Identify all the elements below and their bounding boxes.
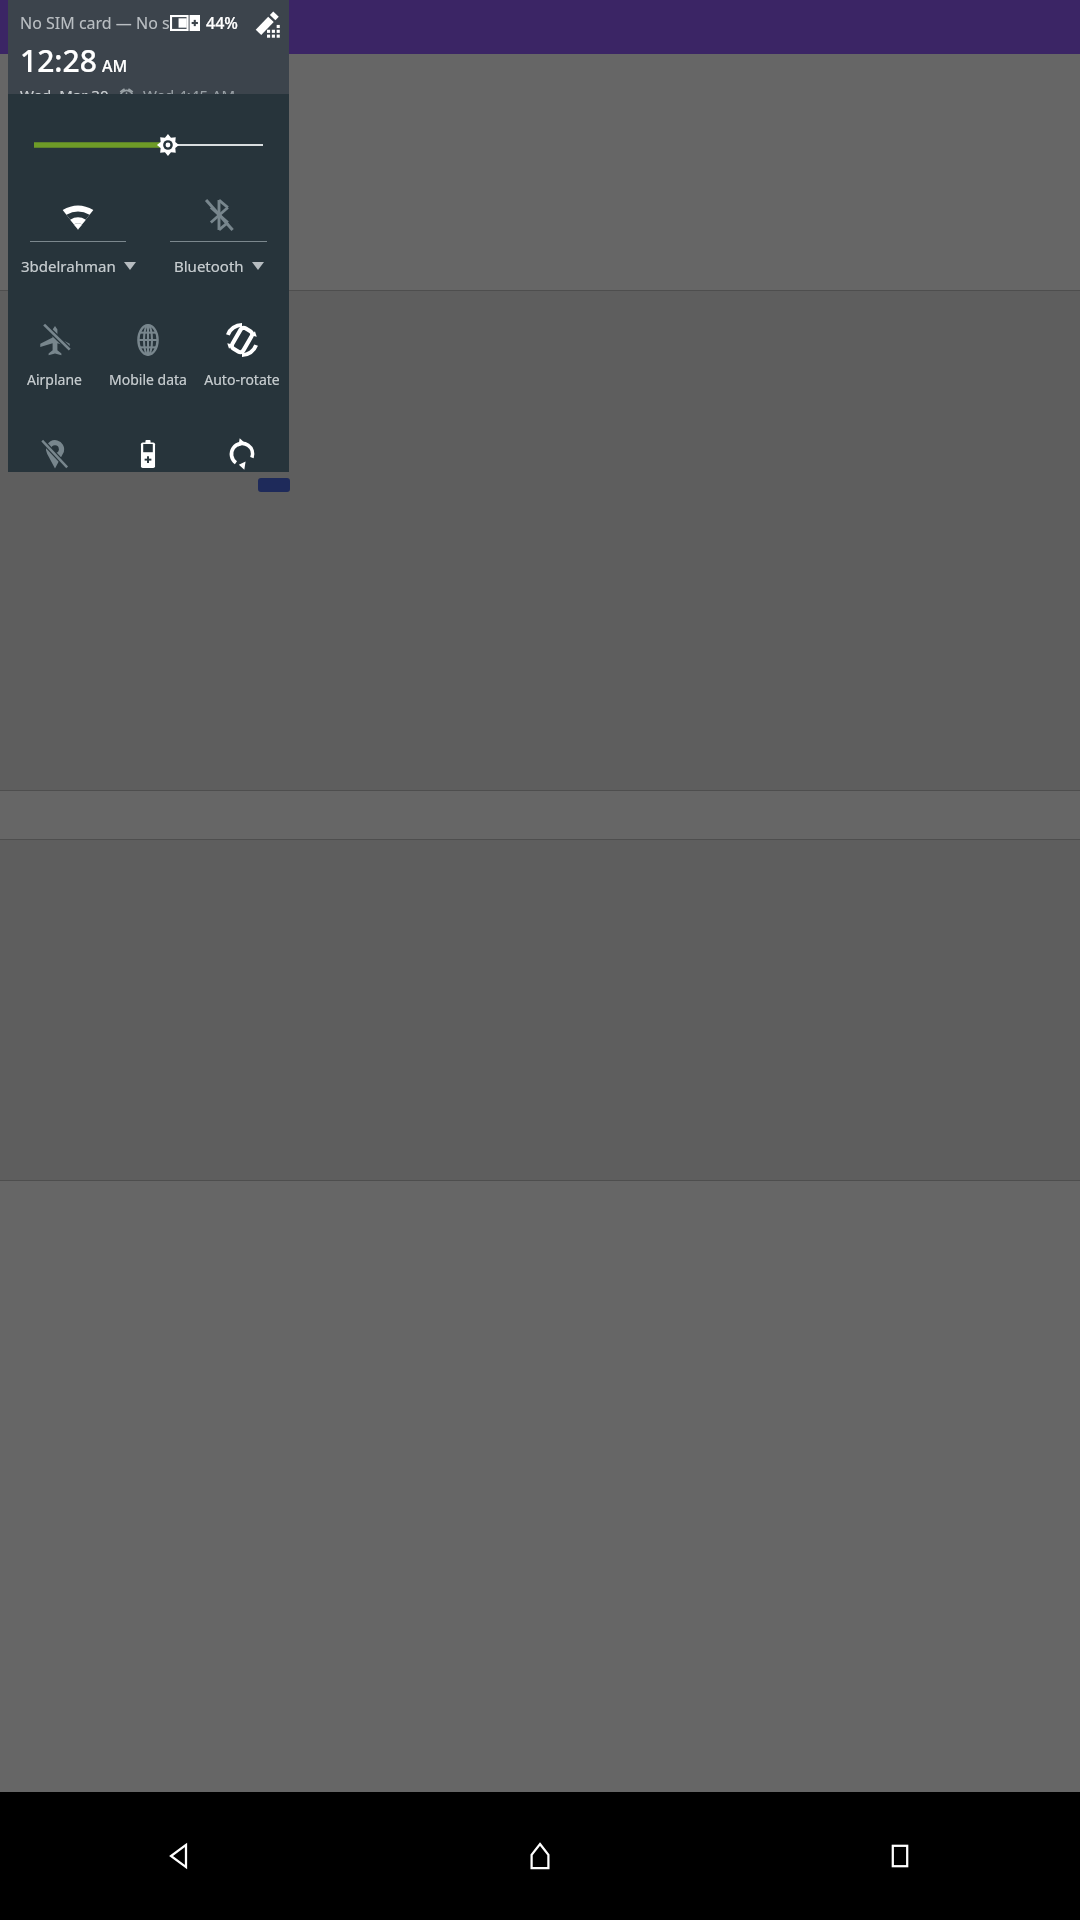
button[interactable]: Edit quick settings — [254, 6, 279, 40]
button[interactable]: Recent apps — [720, 1792, 1080, 1920]
staticText: 12:28 — [20, 40, 97, 81]
button[interactable]: Mobile data — [101, 320, 195, 406]
button[interactable]: Airplane mode — [8, 320, 101, 406]
button[interactable]: 3bdelrahman — [8, 192, 148, 296]
staticText: Auto-rotate — [204, 370, 280, 389]
staticText: Airplane mode — [8, 370, 101, 389]
staticText: No SIM card — No s — [20, 12, 170, 34]
button[interactable]: Bluetooth — [148, 192, 289, 296]
button[interactable]: Brightness — [8, 128, 289, 162]
button[interactable]: Home — [360, 1792, 720, 1920]
staticText: Mobile data — [109, 370, 187, 389]
button[interactable]: Back — [0, 1792, 360, 1920]
button[interactable]: Auto-rotate — [195, 320, 289, 406]
staticText: 44% — [206, 12, 238, 34]
staticText: Wed 4:45 AM — [143, 85, 236, 105]
staticText: 3bdelrahman — [21, 256, 116, 276]
button[interactable]: Location — [8, 434, 101, 472]
button[interactable]: STAMINA — [101, 434, 195, 472]
staticText: Bluetooth — [174, 256, 244, 276]
staticText: AM — [102, 55, 128, 77]
button[interactable]: Auto-sync data — [195, 434, 289, 472]
staticText: Wed, Mar 30 — [20, 85, 109, 105]
